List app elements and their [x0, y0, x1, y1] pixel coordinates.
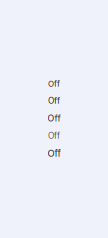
- staticText: Off: [47, 148, 60, 159]
- staticText: Off: [47, 113, 60, 123]
- staticText: Off: [48, 79, 60, 89]
- staticText: Off: [48, 96, 60, 106]
- staticText: Off: [48, 130, 60, 141]
